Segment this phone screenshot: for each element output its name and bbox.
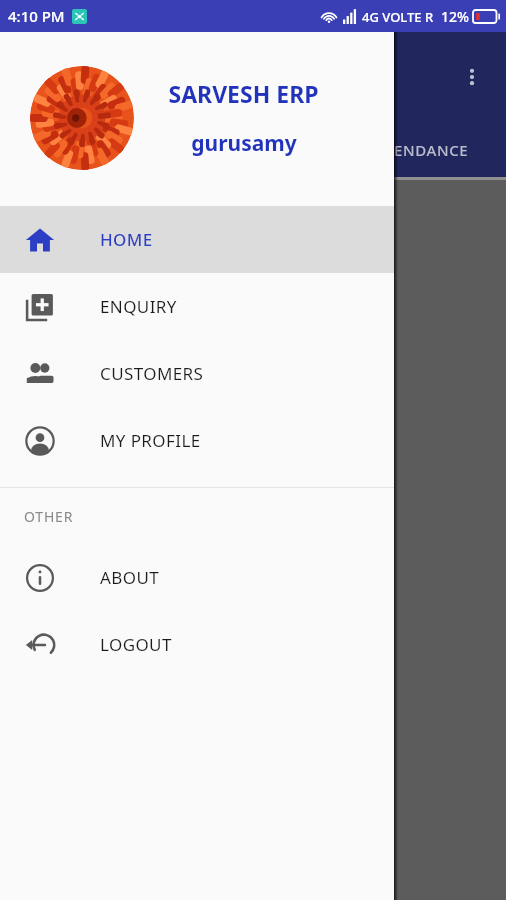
staticText: 4G VOLTE R [362,8,434,26]
staticText: 12% [441,7,469,26]
staticText: CUSTOMERS [100,362,204,385]
staticText: SARVESH ERP [168,78,319,109]
staticText: ENDANCE [394,140,469,160]
button[interactable]: More options [450,55,494,99]
button[interactable]: LOGOUT [0,611,394,678]
staticText: HOME [100,228,153,251]
button[interactable]: ENQUIRY [0,273,394,340]
staticText: OTHER [24,507,74,526]
button[interactable]: MY PROFILE [0,407,394,474]
staticText: 4:10 PM [8,6,65,26]
staticText: LOGOUT [100,633,172,656]
staticText: ENQUIRY [100,295,177,318]
button[interactable]: HOME [0,206,394,273]
button[interactable]: CUSTOMERS [0,340,394,407]
staticText: ABOUT [100,566,160,589]
button[interactable]: ABOUT [0,544,394,611]
staticText: gurusamy [191,129,297,158]
staticText: MY PROFILE [100,429,201,452]
button[interactable]: ENDANCE [394,140,469,160]
